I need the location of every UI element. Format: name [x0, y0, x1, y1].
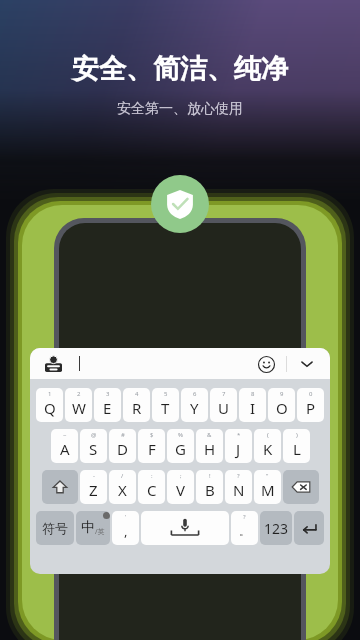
staticText: (	[267, 431, 269, 439]
staticText: 安全第一、放心使用	[117, 100, 243, 118]
staticText: Q	[44, 398, 56, 418]
button[interactable]: 1	[36, 388, 63, 422]
staticText: ?	[243, 513, 246, 521]
staticText: 2	[77, 390, 81, 398]
button[interactable]: ?	[225, 470, 252, 504]
button[interactable]: '	[112, 511, 139, 545]
staticText: L	[293, 439, 301, 459]
staticText: 7	[222, 390, 226, 398]
button[interactable]: Security verified	[151, 175, 209, 233]
staticText: /英	[95, 527, 105, 537]
staticText: S	[89, 439, 98, 459]
button[interactable]	[294, 511, 324, 545]
staticText: 4	[135, 390, 139, 398]
button[interactable]: "	[254, 470, 281, 504]
staticText: &	[207, 431, 212, 439]
staticText: I	[250, 398, 256, 418]
staticText: 1	[48, 390, 52, 398]
staticText: ?	[237, 472, 240, 480]
staticText: -	[93, 472, 95, 480]
staticText: "	[266, 472, 269, 480]
staticText: ,	[124, 522, 128, 540]
button[interactable]: 4	[123, 388, 150, 422]
staticText: $	[150, 431, 154, 439]
button[interactable]: 0	[297, 388, 324, 422]
staticText: F	[148, 439, 156, 459]
staticText: E	[103, 398, 112, 418]
staticText: /	[121, 472, 124, 480]
button[interactable]: %	[167, 429, 194, 463]
button[interactable]: 6	[181, 388, 208, 422]
button[interactable]: 中	[76, 511, 110, 545]
staticText: *	[237, 431, 241, 439]
staticText: 。	[239, 524, 250, 538]
staticText: P	[306, 398, 316, 418]
staticText: T	[161, 398, 170, 418]
button[interactable]: -	[80, 470, 107, 504]
staticText: 0	[309, 390, 313, 398]
staticText: :	[151, 472, 153, 480]
staticText: C	[147, 480, 157, 500]
button[interactable]: Hide keyboard	[294, 351, 320, 377]
staticText: D	[117, 439, 128, 459]
staticText: %	[178, 431, 183, 439]
button[interactable]: !	[196, 470, 223, 504]
staticText: @	[91, 431, 97, 439]
staticText: '	[125, 513, 127, 521]
staticText: W	[72, 398, 86, 418]
staticText: 中	[81, 519, 95, 537]
staticText: G	[175, 439, 186, 459]
staticText: N	[233, 480, 245, 500]
staticText: 8	[251, 390, 255, 398]
staticText: R	[132, 398, 142, 418]
staticText: ;	[180, 472, 182, 480]
button[interactable]: 9	[268, 388, 295, 422]
button[interactable]: &	[196, 429, 223, 463]
staticText: U	[218, 398, 229, 418]
button[interactable]: Space, voice input	[141, 511, 229, 545]
button[interactable]: 123	[260, 511, 292, 545]
button[interactable]	[42, 470, 78, 504]
button[interactable]: *	[225, 429, 252, 463]
staticText: 123	[264, 519, 289, 538]
staticText: 符号	[42, 520, 68, 536]
staticText: Z	[89, 480, 98, 500]
button[interactable]: (	[254, 429, 281, 463]
staticText: 6	[193, 390, 197, 398]
button[interactable]: 7	[210, 388, 237, 422]
staticText: 9	[280, 390, 284, 398]
button[interactable]: @	[80, 429, 107, 463]
staticText: !	[209, 472, 211, 480]
staticText: A	[60, 439, 70, 459]
staticText: K	[263, 439, 273, 459]
staticText: M	[261, 480, 275, 500]
button[interactable]: :	[138, 470, 165, 504]
staticText: V	[176, 480, 186, 500]
staticText: 5	[164, 390, 168, 398]
staticText: ~	[63, 431, 67, 439]
staticText: )	[296, 431, 298, 439]
staticText: Y	[190, 398, 199, 418]
staticText: J	[236, 439, 241, 459]
button[interactable]: Switch input language	[41, 352, 65, 376]
staticText: O	[276, 398, 288, 418]
button[interactable]: 5	[152, 388, 179, 422]
button[interactable]: ;	[167, 470, 194, 504]
staticText: 3	[106, 390, 110, 398]
button[interactable]	[283, 470, 319, 504]
button[interactable]: /	[109, 470, 136, 504]
button[interactable]: 2	[65, 388, 92, 422]
staticText: X	[118, 480, 127, 500]
button[interactable]: 符号	[36, 511, 74, 545]
button[interactable]: ?	[231, 511, 258, 545]
button[interactable]: ~	[51, 429, 78, 463]
button[interactable]: )	[283, 429, 310, 463]
button[interactable]: Emoji	[253, 351, 279, 377]
staticText: 安全、简洁、纯净	[72, 52, 288, 86]
button[interactable]: $	[138, 429, 165, 463]
button[interactable]: #	[109, 429, 136, 463]
button[interactable]: 8	[239, 388, 266, 422]
staticText: H	[204, 439, 216, 459]
button[interactable]: 3	[94, 388, 121, 422]
staticText: #	[121, 431, 125, 439]
